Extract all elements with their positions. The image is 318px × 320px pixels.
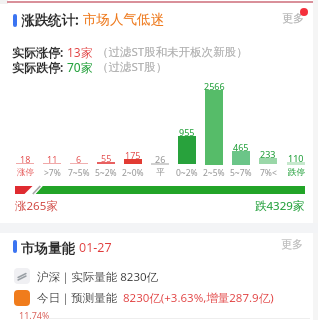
staticText: 18 bbox=[20, 153, 31, 165]
staticText: 2~0% bbox=[122, 167, 144, 179]
staticText: 955 bbox=[179, 126, 195, 138]
staticText: 7~5% bbox=[68, 167, 90, 179]
button[interactable]: 市场量能 bbox=[21, 240, 112, 257]
staticText: 市场量能 bbox=[21, 240, 75, 257]
staticText: 跌停 bbox=[288, 167, 305, 178]
staticText: 11.74% bbox=[19, 309, 50, 320]
staticText: 70家 bbox=[67, 59, 93, 75]
staticText: 7%< bbox=[260, 167, 277, 179]
staticText: 55 bbox=[101, 152, 112, 164]
staticText: 涨跌统计: bbox=[21, 11, 79, 29]
staticText: 0~2% bbox=[176, 167, 198, 179]
staticText: 6 bbox=[76, 153, 82, 165]
button[interactable]: 今日｜预测量能 bbox=[14, 290, 274, 306]
staticText: 涨265家 bbox=[15, 198, 58, 214]
button[interactable]: 沪深｜实际量能 8230亿 bbox=[14, 268, 159, 284]
button[interactable]: 更多 bbox=[281, 237, 303, 251]
staticText: 8230亿(+3.63%,增量287.9亿) bbox=[123, 290, 274, 306]
staticText: 实际涨停: bbox=[12, 44, 64, 60]
button[interactable]: 更多 bbox=[282, 11, 304, 25]
staticText: 5~7% bbox=[230, 167, 252, 179]
staticText: 110 bbox=[288, 152, 304, 164]
staticText: 沪深｜实际量能 8230亿 bbox=[37, 269, 159, 285]
staticText: 26 bbox=[155, 153, 166, 165]
staticText: （过滤ST股） bbox=[97, 59, 168, 75]
staticText: 175 bbox=[125, 149, 141, 161]
staticText: 涨停 bbox=[17, 167, 34, 178]
staticText: >7% bbox=[44, 167, 61, 179]
staticText: 01-27 bbox=[79, 239, 112, 256]
staticText: 今日｜预测量能 bbox=[37, 290, 121, 306]
staticText: 2~5% bbox=[203, 167, 225, 179]
staticText: 实际跌停: bbox=[12, 59, 64, 75]
button[interactable]: 涨跌统计: bbox=[21, 11, 164, 29]
staticText: 2566 bbox=[204, 80, 225, 92]
staticText: 233 bbox=[260, 148, 276, 160]
staticText: 13家 bbox=[67, 44, 93, 60]
staticText: （过滤ST股和未开板次新股） bbox=[97, 44, 248, 60]
staticText: 465 bbox=[233, 141, 249, 153]
staticText: 跌4329家 bbox=[255, 198, 305, 214]
staticText: 5~2% bbox=[95, 167, 117, 179]
staticText: 11 bbox=[47, 153, 58, 165]
staticText: 市场人气低迷 bbox=[83, 11, 164, 28]
staticText: 平 bbox=[156, 167, 165, 178]
